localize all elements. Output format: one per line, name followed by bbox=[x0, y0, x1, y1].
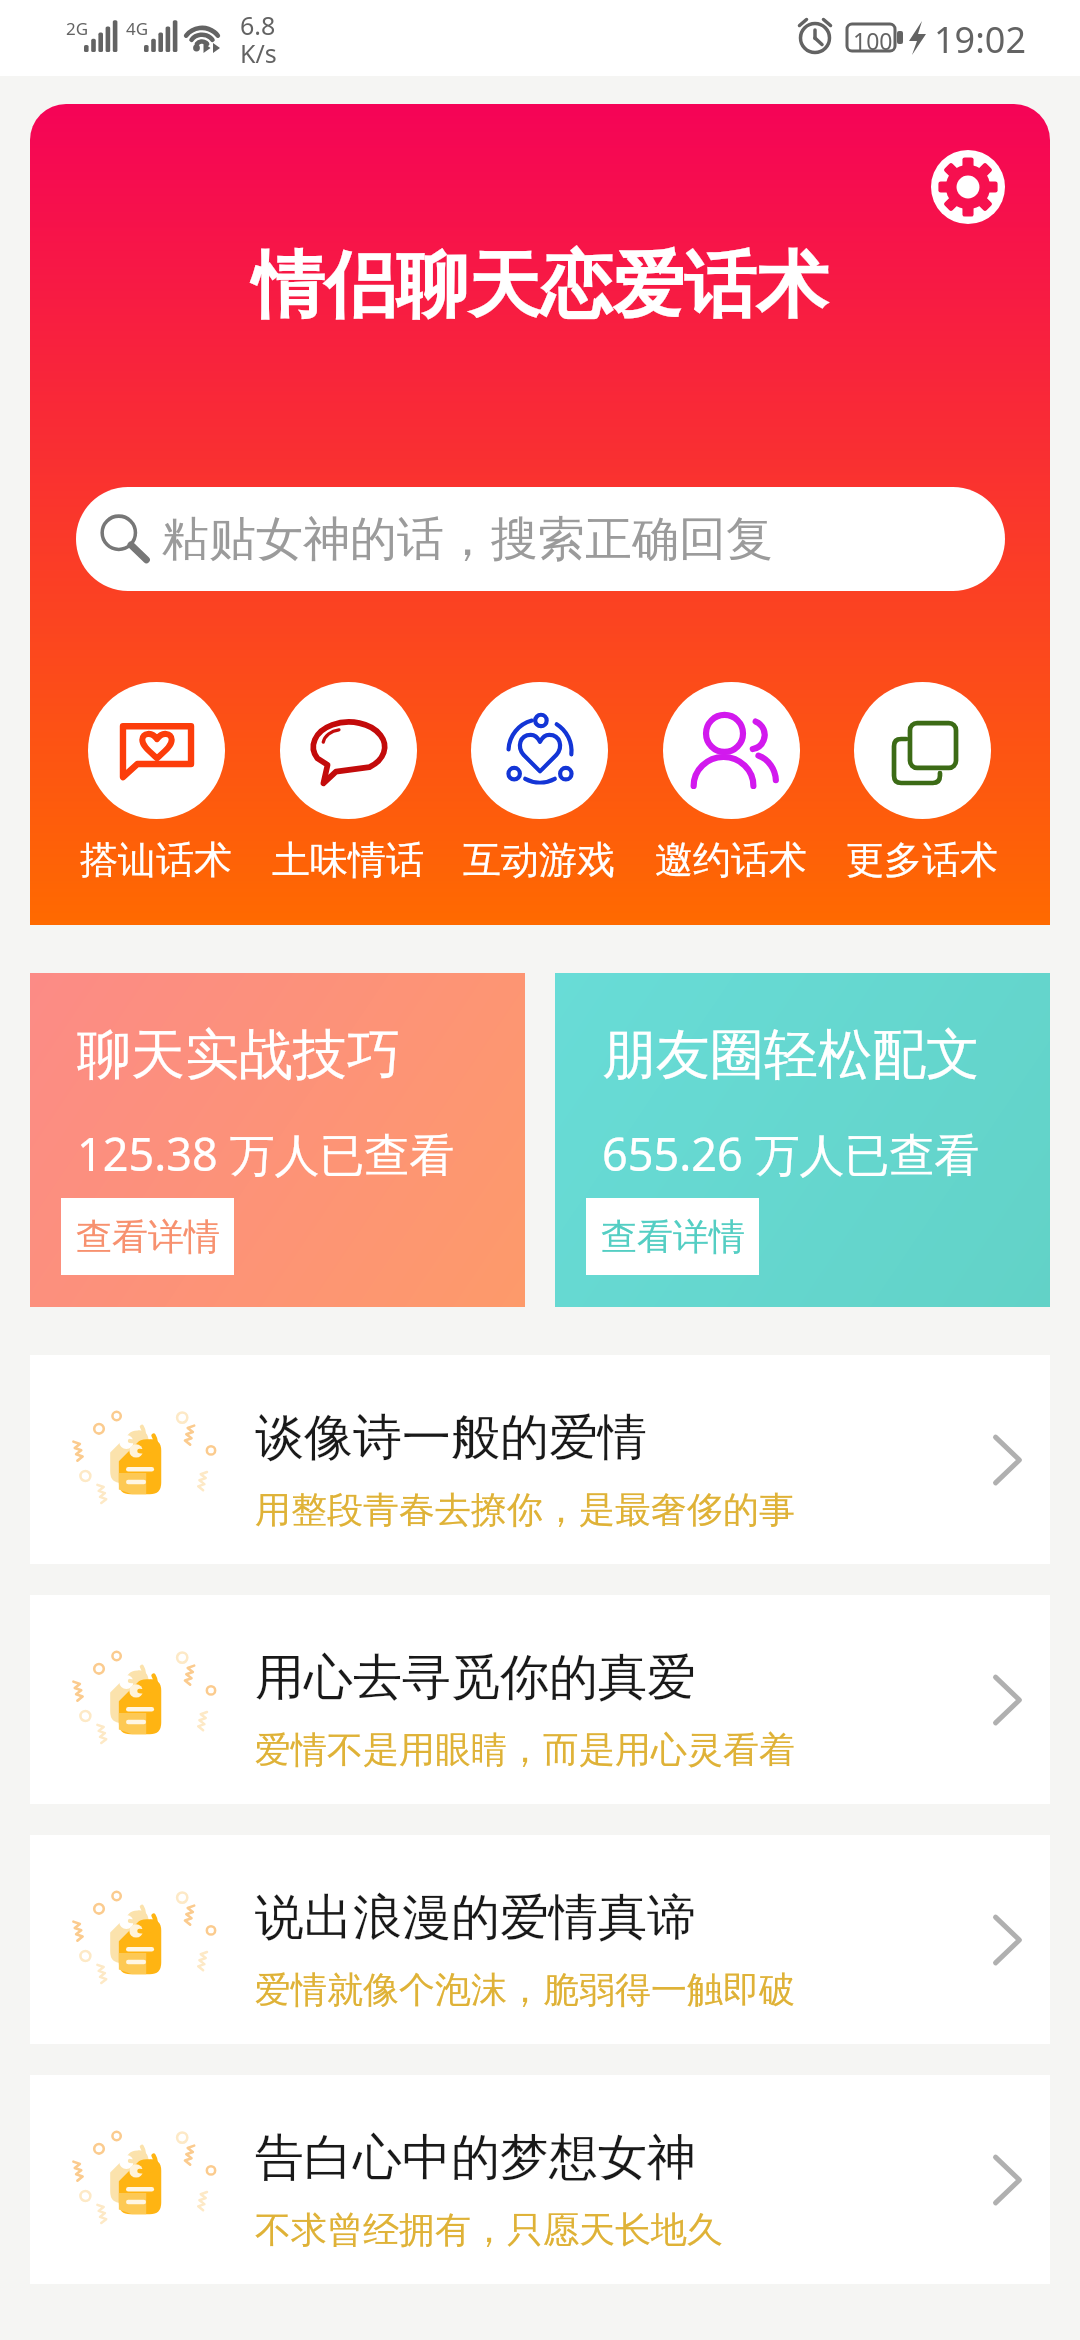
button[interactable]: 告白心中的梦想女神 bbox=[30, 2075, 1050, 2284]
staticText: 朋友圈轻松配文 bbox=[602, 1021, 980, 1089]
staticText: 查看详情 bbox=[76, 1214, 220, 1259]
staticText: 不求曾经拥有，只愿天长地久 bbox=[255, 2207, 723, 2252]
button[interactable]: 朋友圈轻松配文 bbox=[555, 973, 1050, 1307]
staticText: 用心去寻觅你的真爱 bbox=[255, 1647, 696, 1709]
staticText: 搭讪话术 bbox=[80, 836, 232, 884]
staticText: 655.26 万人已查看 bbox=[602, 1123, 980, 1184]
staticText: 2G bbox=[66, 17, 89, 40]
staticText: 聊天实战技巧 bbox=[77, 1021, 401, 1089]
staticText: 更多话术 bbox=[846, 836, 998, 884]
button[interactable]: 更多话术 bbox=[842, 682, 1002, 884]
staticText: 谈像诗一般的爱情 bbox=[255, 1407, 647, 1469]
button[interactable]: 聊天实战技巧 bbox=[30, 973, 525, 1307]
staticText: 说出浪漫的爱情真谛 bbox=[255, 1887, 696, 1949]
staticText: 粘贴女神的话，搜索正确回复 bbox=[162, 510, 773, 569]
button[interactable]: Settings bbox=[931, 150, 1005, 224]
staticText: 情侣聊天恋爱话术 bbox=[252, 241, 828, 332]
staticText: 19:02 bbox=[934, 15, 1027, 64]
button[interactable]: 互动游戏 bbox=[459, 682, 619, 884]
button[interactable]: 土味情话 bbox=[268, 682, 428, 884]
staticText: 互动游戏 bbox=[463, 836, 615, 884]
button[interactable]: 查看详情 bbox=[586, 1198, 759, 1275]
staticText: 100 bbox=[853, 25, 893, 56]
button[interactable]: 说出浪漫的爱情真谛 bbox=[30, 1835, 1050, 2044]
staticText: 125.38 万人已查看 bbox=[77, 1123, 455, 1184]
staticText: 邀约话术 bbox=[655, 836, 807, 884]
staticText: 4G bbox=[126, 17, 149, 40]
button[interactable]: 用心去寻觅你的真爱 bbox=[30, 1595, 1050, 1804]
button[interactable]: 搭讪话术 bbox=[76, 682, 236, 884]
staticText: 爱情就像个泡沫，脆弱得一触即破 bbox=[255, 1967, 795, 2012]
button[interactable]: 粘贴女神的话，搜索正确回复 bbox=[76, 487, 1005, 591]
staticText: 用整段青春去撩你，是最奢侈的事 bbox=[255, 1487, 795, 1532]
button[interactable]: 查看详情 bbox=[61, 1198, 234, 1275]
staticText: 告白心中的梦想女神 bbox=[255, 2127, 696, 2189]
button[interactable]: 邀约话术 bbox=[651, 682, 811, 884]
staticText: 查看详情 bbox=[601, 1214, 745, 1259]
staticText: 6.8 K/s bbox=[240, 8, 277, 70]
staticText: 土味情话 bbox=[272, 836, 424, 884]
staticText: 爱情不是用眼睛，而是用心灵看着 bbox=[255, 1727, 795, 1772]
button[interactable]: 谈像诗一般的爱情 bbox=[30, 1355, 1050, 1564]
